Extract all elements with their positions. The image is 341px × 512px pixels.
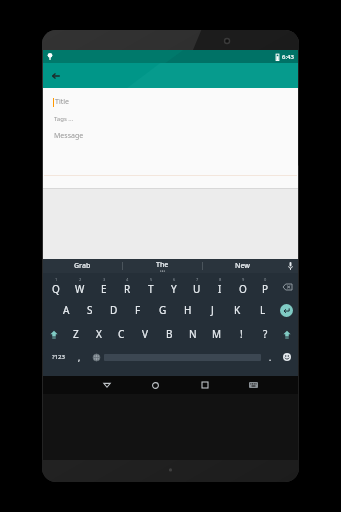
staticText: K <box>234 303 241 317</box>
button[interactable]: Shift <box>44 322 64 346</box>
staticText: Tags ... <box>54 115 74 123</box>
button[interactable]: 3 <box>92 275 116 298</box>
button[interactable]: F <box>126 298 150 322</box>
button[interactable]: 1 <box>44 275 68 298</box>
staticText: , <box>78 352 81 363</box>
button[interactable]: ?123 <box>46 346 70 368</box>
staticText: Grab <box>74 261 91 271</box>
button[interactable]: Backspace <box>277 275 297 298</box>
button[interactable]: V <box>133 322 157 346</box>
button[interactable]: 2 <box>68 275 92 298</box>
staticText: 0 <box>264 277 267 282</box>
button[interactable]: The <box>123 259 202 273</box>
button[interactable]: . <box>261 346 279 368</box>
staticText: P <box>262 282 269 296</box>
staticText: 2 <box>79 277 82 282</box>
button[interactable]: 6 <box>162 275 185 298</box>
staticText: The <box>156 260 169 270</box>
button[interactable]: 9 <box>231 275 254 298</box>
button[interactable]: Emoji <box>279 346 295 368</box>
button[interactable]: Home <box>131 376 180 394</box>
staticText: Q <box>52 282 60 296</box>
button[interactable]: M <box>205 322 229 346</box>
button[interactable]: J <box>200 298 225 322</box>
button[interactable]: Voice input <box>282 259 298 273</box>
staticText: I <box>218 282 222 296</box>
staticText: G <box>159 303 167 317</box>
staticText: R <box>124 282 131 296</box>
staticText: Title <box>55 97 69 107</box>
button[interactable]: Shift <box>277 322 297 346</box>
staticText: 8 <box>219 277 222 282</box>
button[interactable]: New <box>203 259 282 273</box>
button[interactable]: 4 <box>116 275 139 298</box>
button[interactable]: ! <box>229 322 253 346</box>
button[interactable]: N <box>181 322 205 346</box>
staticText: O <box>239 282 247 296</box>
staticText: ! <box>240 327 243 341</box>
button[interactable]: Title <box>43 88 298 188</box>
button[interactable]: K <box>225 298 250 322</box>
staticText: A <box>63 303 70 317</box>
staticText: ?123 <box>52 353 65 361</box>
staticText: X <box>96 327 102 341</box>
button[interactable]: H <box>175 298 200 322</box>
button[interactable]: C <box>110 322 133 346</box>
staticText: T <box>148 282 154 296</box>
staticText: New <box>235 261 250 271</box>
button[interactable]: Back <box>82 376 131 394</box>
staticText: 6 <box>173 277 176 282</box>
staticText: F <box>135 303 141 317</box>
button[interactable]: Grab <box>43 259 122 273</box>
button[interactable]: A <box>54 298 78 322</box>
button[interactable]: 8 <box>208 275 231 298</box>
button[interactable]: Switch keyboard <box>229 376 278 394</box>
button[interactable]: 5 <box>139 275 162 298</box>
staticText: Y <box>171 282 177 296</box>
staticText: Z <box>73 327 79 341</box>
button[interactable]: Back <box>47 67 65 85</box>
staticText: E <box>101 282 107 296</box>
staticText: 9 <box>242 277 245 282</box>
staticText: Message <box>54 131 84 141</box>
staticText: J <box>211 303 214 317</box>
button[interactable]: G <box>150 298 175 322</box>
staticText: C <box>118 327 125 341</box>
button[interactable]: ? <box>253 322 277 346</box>
staticText: 6:43 <box>282 53 294 61</box>
staticText: 5 <box>150 277 153 282</box>
staticText: 1 <box>55 277 58 282</box>
staticText: H <box>184 303 192 317</box>
button[interactable]: 7 <box>185 275 208 298</box>
button[interactable]: 0 <box>254 275 277 298</box>
staticText: 3 <box>103 277 106 282</box>
staticText: B <box>166 327 173 341</box>
staticText: ? <box>263 327 268 341</box>
button[interactable]: X <box>87 322 110 346</box>
button[interactable]: Z <box>64 322 87 346</box>
button[interactable]: D <box>102 298 126 322</box>
staticText: 4 <box>126 277 129 282</box>
staticText: L <box>260 303 266 317</box>
button[interactable]: Enter <box>275 298 297 322</box>
button[interactable]: Change language <box>88 346 104 368</box>
staticText: M <box>212 327 222 341</box>
staticText: W <box>75 282 85 296</box>
button[interactable]: Recents <box>180 376 229 394</box>
staticText: D <box>110 303 118 317</box>
staticText: U <box>193 282 201 296</box>
staticText: S <box>87 303 93 317</box>
staticText: N <box>189 327 197 341</box>
button[interactable]: , <box>70 346 88 368</box>
button[interactable]: S <box>78 298 102 322</box>
staticText: V <box>142 327 148 341</box>
button[interactable]: B <box>157 322 181 346</box>
staticText: 7 <box>196 277 199 282</box>
button[interactable]: L <box>250 298 275 322</box>
staticText: . <box>269 352 272 363</box>
